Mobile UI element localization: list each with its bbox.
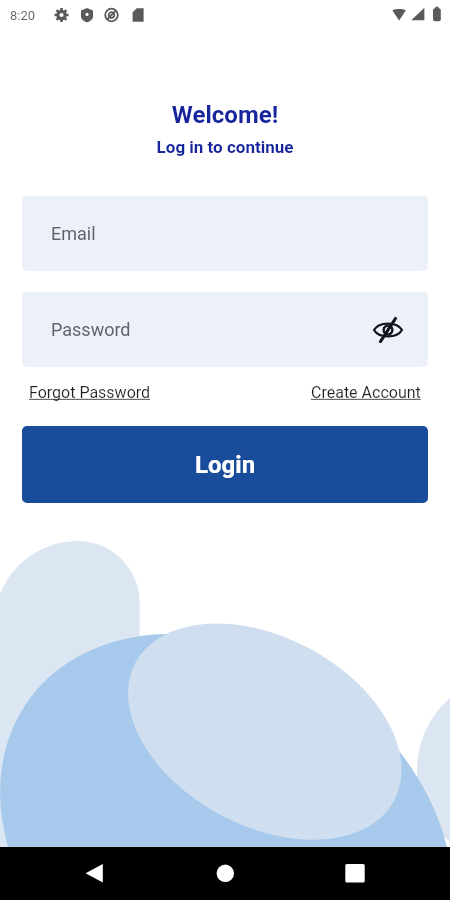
- staticText: Login: [195, 451, 256, 479]
- button[interactable]: Login: [22, 426, 428, 503]
- staticText: Forgot Password: [29, 383, 151, 402]
- button[interactable]: Show password: [368, 310, 408, 350]
- staticText: Create Account: [311, 383, 421, 402]
- staticText: Password: [51, 319, 131, 340]
- staticText: 8:20: [10, 8, 36, 23]
- staticText: Welcome!: [0, 101, 450, 129]
- staticText: Log in to continue: [0, 137, 450, 157]
- button[interactable]: Forgot Password: [29, 383, 151, 402]
- button[interactable]: Create Account: [311, 383, 421, 402]
- staticText: Email: [51, 223, 96, 244]
- button[interactable]: Email: [22, 196, 428, 271]
- button[interactable]: Password: [22, 292, 428, 367]
